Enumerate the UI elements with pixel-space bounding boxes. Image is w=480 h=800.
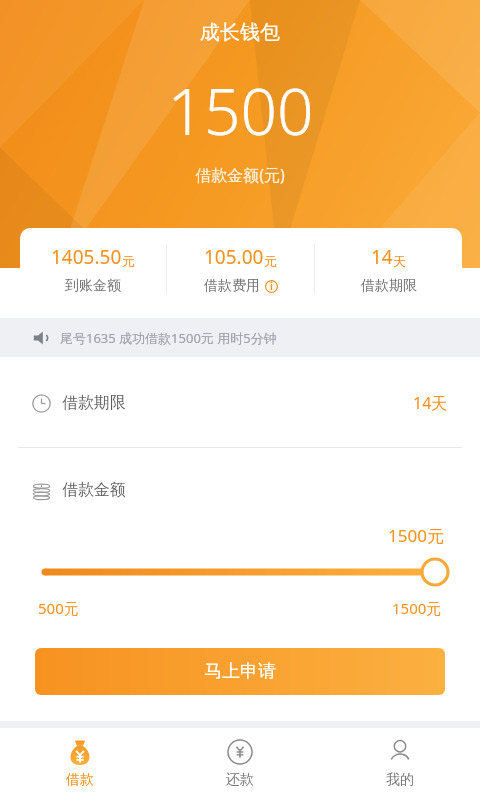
staticText: 105.00 <box>204 244 264 270</box>
staticText: 借款期限 <box>62 393 126 413</box>
staticText: 1500元 <box>388 524 444 547</box>
staticText: 1500元 <box>392 598 442 618</box>
staticText: 天 <box>393 253 406 269</box>
staticText: 借款期限 <box>361 277 417 295</box>
button[interactable]: 尾号1635 成功借款1500元 用时5分钟 <box>0 318 480 357</box>
staticText: 借款金额(元) <box>195 164 285 186</box>
staticText: 500元 <box>38 598 79 618</box>
staticText: 14 <box>371 244 393 270</box>
button[interactable]: 我的 <box>320 728 480 800</box>
staticText: 马上申请 <box>204 660 276 683</box>
staticText: 借款费用 <box>204 277 260 295</box>
staticText: 我的 <box>386 771 414 789</box>
button[interactable]: 马上申请 <box>35 648 445 695</box>
button[interactable] <box>0 550 480 594</box>
button[interactable]: 借款 <box>0 728 160 800</box>
staticText: 1405.50 <box>51 244 122 270</box>
other: 费用说明 <box>265 280 278 293</box>
staticText: 成长钱包 <box>200 20 280 45</box>
staticText: 14天 <box>413 392 448 414</box>
button[interactable]: 14 <box>315 228 462 310</box>
staticText: 元 <box>264 253 277 269</box>
button[interactable]: 借款期限 <box>0 375 480 431</box>
staticText: 还款 <box>226 771 254 789</box>
button[interactable]: 105.00 <box>167 228 314 310</box>
staticText: 借款金额 <box>62 480 126 500</box>
staticText: 到账金额 <box>65 277 121 295</box>
staticText: 尾号1635 成功借款1500元 用时5分钟 <box>60 329 277 347</box>
button[interactable]: 还款 <box>160 728 320 800</box>
staticText: 1500 <box>167 67 314 154</box>
staticText: 元 <box>122 253 135 269</box>
button[interactable]: 1405.50 <box>20 228 166 310</box>
staticText: 借款 <box>66 771 94 789</box>
